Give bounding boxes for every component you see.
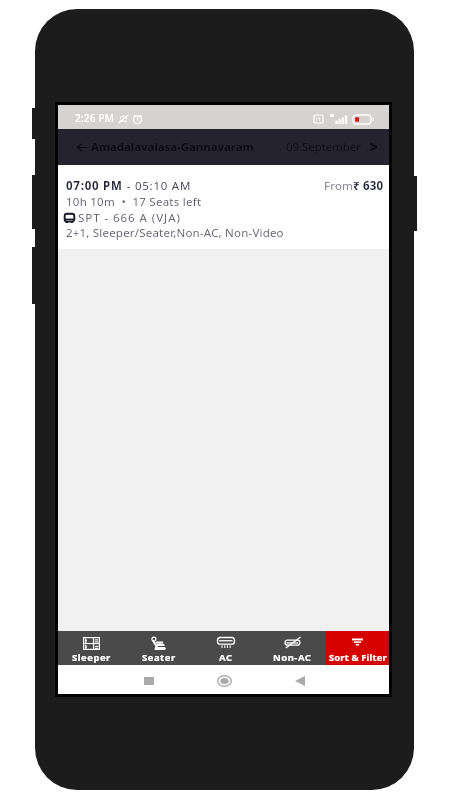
staticText: Seater (142, 651, 176, 664)
button[interactable]: Sleeper (58, 631, 125, 665)
staticText: 2:26 PM (75, 111, 115, 125)
button[interactable]: Home (209, 665, 239, 694)
staticText: AC (219, 651, 233, 664)
button[interactable]: Seater (125, 631, 192, 665)
staticText: 07:00 PM (66, 178, 123, 194)
staticText: Sleeper (72, 651, 111, 664)
staticText: Non-AC (273, 651, 312, 664)
button[interactable]: 07:00 PM (58, 165, 389, 249)
staticText: ₹ 630 (353, 178, 384, 194)
button[interactable]: AC (192, 631, 259, 665)
staticText: - 05:10 AM (123, 178, 192, 194)
staticText: 09 September (286, 139, 361, 155)
staticText: From (324, 178, 353, 194)
button[interactable]: Recents (134, 665, 164, 694)
button[interactable]: Back (72, 138, 91, 157)
staticText: SPT - 666 A (VJA) (78, 210, 181, 226)
button[interactable]: 09 September (282, 139, 381, 155)
staticText: Amadalavalasa-Gannavaram (91, 139, 254, 155)
button[interactable]: Sort & Filter (326, 631, 389, 665)
button[interactable]: Back (285, 665, 315, 694)
staticText: Sort & Filter (329, 651, 387, 664)
staticText: 2+1, Sleeper/Seater,Non-AC, Non-Video (66, 225, 284, 241)
staticText: 10h 10m • 17 Seats left (66, 194, 202, 210)
button[interactable]: Non-AC (259, 631, 326, 665)
